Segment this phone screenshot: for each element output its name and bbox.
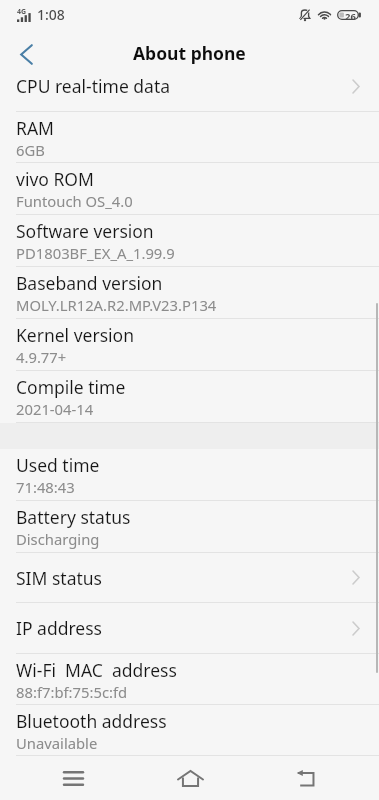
staticText: Wi-Fi MAC address xyxy=(16,658,177,682)
button[interactable]: Kernel version xyxy=(0,319,379,371)
button[interactable]: IP address xyxy=(0,603,379,654)
staticText: Kernel version xyxy=(16,323,134,347)
staticText: CPU real-time data xyxy=(16,74,171,98)
button[interactable]: Battery status xyxy=(0,501,379,553)
staticText: RAM xyxy=(16,116,54,140)
staticText: 4G xyxy=(17,7,27,17)
staticText: Compile time xyxy=(16,375,126,399)
staticText: 26 xyxy=(345,10,356,20)
button[interactable]: Compile time xyxy=(0,371,379,423)
button[interactable]: Home xyxy=(151,757,229,800)
button[interactable]: Recent apps xyxy=(34,757,112,800)
button[interactable]: Software version xyxy=(0,215,379,267)
staticText: Baseband version xyxy=(16,271,163,295)
staticText: 88:f7:bf:75:5c:fd xyxy=(16,682,128,702)
button[interactable]: Wi-Fi MAC address xyxy=(0,654,379,705)
staticText: Discharging xyxy=(16,529,100,549)
button[interactable]: RAM xyxy=(0,112,379,163)
button[interactable]: Baseband version xyxy=(0,267,379,319)
button[interactable]: Bluetooth address xyxy=(0,705,379,756)
staticText: SIM status xyxy=(16,566,102,590)
staticText: vivo ROM xyxy=(16,167,94,191)
staticText: Unavailable xyxy=(16,733,98,753)
staticText: Software version xyxy=(16,219,154,243)
staticText: IP address xyxy=(16,616,102,640)
button[interactable]: Navigate up xyxy=(4,35,48,74)
staticText: MOLY.LR12A.R2.MP.V23.P134 xyxy=(16,295,217,315)
button[interactable]: Back xyxy=(266,757,344,800)
staticText: Battery status xyxy=(16,505,131,529)
staticText: 1:08 xyxy=(37,5,65,24)
button[interactable]: vivo ROM xyxy=(0,163,379,215)
button[interactable]: Used time xyxy=(0,449,379,501)
staticText: Bluetooth address xyxy=(16,709,167,733)
button[interactable]: CPU real-time data xyxy=(0,67,379,112)
staticText: 6GB xyxy=(16,140,45,160)
staticText: About phone xyxy=(133,41,246,65)
staticText: Used time xyxy=(16,453,100,477)
staticText: 71:48:43 xyxy=(16,477,75,497)
staticText: PD1803BF_EX_A_1.99.9 xyxy=(16,243,175,263)
button[interactable]: SIM status xyxy=(0,553,379,603)
staticText: Funtouch OS_4.0 xyxy=(16,191,133,211)
staticText: 4.9.77+ xyxy=(16,347,67,367)
staticText: 2021-04-14 xyxy=(16,399,94,419)
